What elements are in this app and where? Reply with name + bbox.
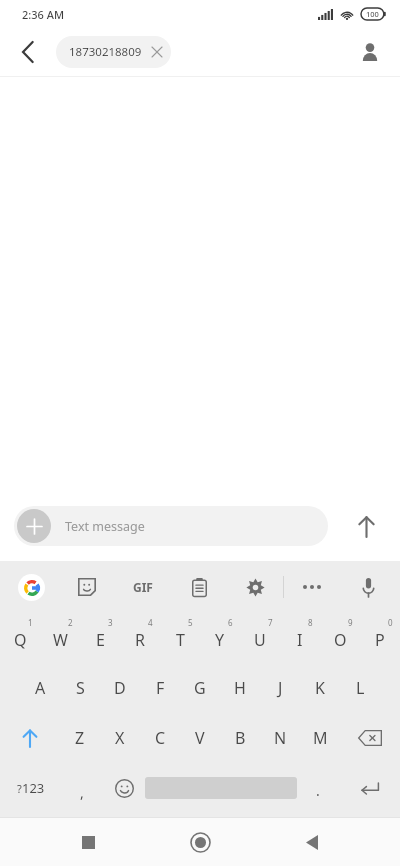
staticText: . bbox=[316, 781, 320, 800]
button[interactable]: Back bbox=[10, 34, 46, 70]
staticText: 3 bbox=[108, 617, 113, 628]
staticText: H bbox=[234, 677, 246, 699]
button[interactable]: B bbox=[220, 713, 260, 763]
staticText: 9 bbox=[348, 617, 353, 628]
button[interactable]: K bbox=[300, 663, 340, 713]
button[interactable]: Enter bbox=[339, 763, 400, 813]
staticText: E bbox=[96, 629, 105, 651]
button[interactable]: J bbox=[260, 663, 300, 713]
button[interactable]: Space bbox=[145, 763, 297, 813]
button[interactable]: N bbox=[260, 713, 300, 763]
staticText: F bbox=[156, 677, 165, 699]
staticText: S bbox=[76, 677, 85, 699]
button[interactable]: Shift bbox=[0, 713, 60, 763]
staticText: G bbox=[194, 677, 206, 699]
button[interactable]: Settings bbox=[227, 561, 283, 613]
staticText: K bbox=[315, 677, 325, 699]
staticText: 4 bbox=[148, 617, 153, 628]
button[interactable]: Google search bbox=[4, 561, 59, 613]
staticText: O bbox=[334, 629, 347, 651]
button[interactable]: S bbox=[60, 663, 100, 713]
button[interactable]: P bbox=[360, 613, 400, 663]
button[interactable]: Stickers bbox=[59, 561, 115, 613]
staticText: U bbox=[254, 629, 266, 651]
button[interactable]: Voice input bbox=[340, 561, 396, 613]
button[interactable]: A bbox=[20, 663, 60, 713]
button[interactable]: V bbox=[180, 713, 220, 763]
staticText: 8 bbox=[308, 617, 313, 628]
button[interactable]: . bbox=[297, 763, 339, 813]
button[interactable]: Contact details bbox=[352, 34, 388, 70]
staticText: J bbox=[278, 677, 283, 699]
button[interactable]: X bbox=[100, 713, 140, 763]
button[interactable]: M bbox=[300, 713, 340, 763]
staticText: ? bbox=[17, 781, 22, 796]
button[interactable]: Q bbox=[0, 613, 40, 663]
staticText: 18730218809 bbox=[69, 44, 142, 60]
staticText: P bbox=[375, 629, 385, 651]
staticText: L bbox=[356, 677, 365, 699]
button[interactable]: Y bbox=[200, 613, 240, 663]
button[interactable]: More options bbox=[284, 561, 340, 613]
staticText: C bbox=[155, 727, 166, 749]
button[interactable]: Attach bbox=[14, 506, 328, 546]
staticText: GIF bbox=[133, 579, 153, 595]
staticText: 1 bbox=[28, 617, 33, 628]
button[interactable]: Attach bbox=[17, 509, 51, 543]
staticText: 7 bbox=[268, 617, 273, 628]
staticText: V bbox=[195, 727, 205, 749]
staticText: Q bbox=[14, 629, 27, 651]
button[interactable]: I bbox=[280, 613, 320, 663]
staticText: 2 bbox=[68, 617, 73, 628]
button[interactable]: Home bbox=[176, 818, 224, 866]
button[interactable]: GIF bbox=[115, 561, 171, 613]
button[interactable]: Emoji bbox=[103, 763, 145, 813]
staticText: B bbox=[235, 727, 246, 749]
staticText: I bbox=[297, 629, 303, 651]
staticText: , bbox=[80, 783, 84, 802]
staticText: M bbox=[313, 727, 328, 749]
staticText: 0 bbox=[388, 617, 393, 628]
staticText: Y bbox=[215, 629, 225, 651]
button[interactable]: Recents bbox=[64, 818, 112, 866]
staticText: W bbox=[53, 629, 68, 651]
button[interactable]: U bbox=[240, 613, 280, 663]
staticText: Z bbox=[75, 727, 85, 749]
staticText: X bbox=[115, 727, 125, 749]
staticText: 6 bbox=[228, 617, 233, 628]
staticText: N bbox=[274, 727, 287, 749]
button[interactable]: D bbox=[100, 663, 140, 713]
button[interactable]: G bbox=[180, 663, 220, 713]
button[interactable]: C bbox=[140, 713, 180, 763]
button[interactable]: , bbox=[61, 763, 103, 813]
button[interactable]: T bbox=[160, 613, 200, 663]
staticText: T bbox=[176, 629, 185, 651]
button[interactable]: Backspace bbox=[340, 713, 400, 763]
button[interactable]: W bbox=[40, 613, 80, 663]
staticText: 123 bbox=[22, 779, 45, 797]
button[interactable]: L bbox=[340, 663, 380, 713]
button[interactable]: Send bbox=[346, 506, 386, 546]
button[interactable]: R bbox=[120, 613, 160, 663]
staticText: 5 bbox=[188, 617, 193, 628]
staticText: 100 bbox=[366, 9, 379, 19]
staticText: D bbox=[114, 677, 126, 699]
button[interactable]: 18730218809 bbox=[56, 36, 171, 68]
button[interactable]: F bbox=[140, 663, 180, 713]
button[interactable]: H bbox=[220, 663, 260, 713]
staticText: R bbox=[135, 629, 145, 651]
staticText: Text message bbox=[65, 518, 145, 535]
staticText: 2:36 AM bbox=[22, 7, 65, 22]
button[interactable]: E bbox=[80, 613, 120, 663]
button[interactable]: O bbox=[320, 613, 360, 663]
button[interactable]: Z bbox=[60, 713, 100, 763]
staticText: A bbox=[35, 677, 46, 699]
button[interactable]: ? bbox=[0, 763, 61, 813]
button[interactable]: Back bbox=[288, 818, 336, 866]
button[interactable]: Clipboard bbox=[171, 561, 227, 613]
